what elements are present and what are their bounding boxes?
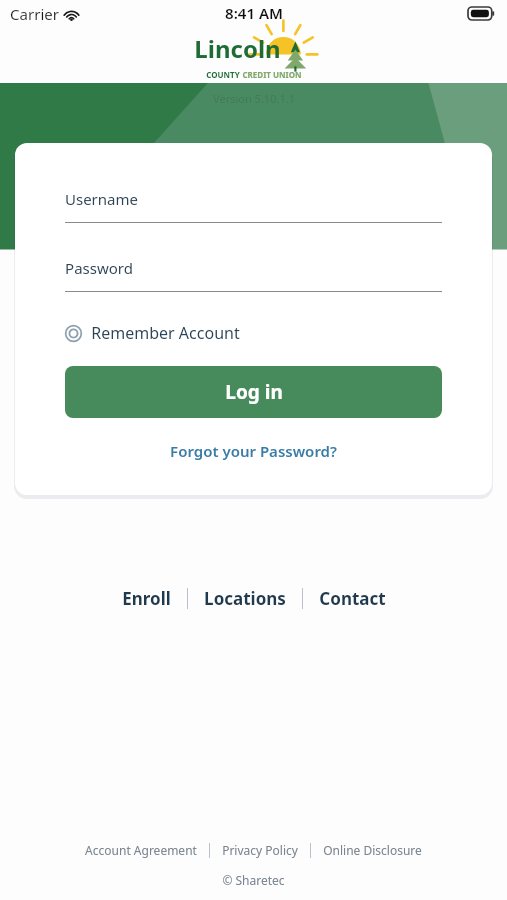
button[interactable]: Username	[65, 189, 442, 223]
staticText: Lincoln	[194, 32, 281, 65]
staticText: COUNTY	[206, 69, 240, 80]
staticText: Account Agreement	[85, 842, 197, 858]
staticText: Privacy Policy	[222, 842, 298, 858]
staticText: Carrier	[10, 4, 59, 24]
staticText: Username	[65, 189, 138, 209]
button[interactable]: Remember Account	[65, 322, 240, 344]
staticText: Forgot your Password?	[170, 441, 337, 461]
button[interactable]: Account Agreement	[73, 838, 209, 862]
button[interactable]: Log in	[65, 366, 442, 418]
staticText: Remember Account	[91, 322, 240, 344]
staticText: Log in	[225, 379, 283, 405]
button[interactable]: Locations	[188, 581, 302, 616]
staticText: CREDIT UNION	[242, 69, 302, 80]
staticText: Contact	[319, 587, 386, 610]
button[interactable]: Contact	[303, 581, 402, 616]
button[interactable]: Privacy Policy	[210, 838, 310, 862]
button[interactable]: Online Disclosure	[311, 838, 434, 862]
staticText: 8:41 AM	[225, 3, 283, 23]
staticText: Version 5.10.1.1	[213, 91, 295, 106]
button[interactable]: Enroll	[106, 581, 187, 616]
staticText: Password	[65, 258, 133, 278]
staticText: Enroll	[122, 587, 171, 610]
button[interactable]: Forgot your Password?	[65, 438, 442, 464]
staticText: © Sharetec	[222, 872, 285, 888]
button[interactable]: Password	[65, 258, 442, 292]
staticText: Online Disclosure	[323, 842, 422, 858]
staticText: Locations	[204, 587, 286, 610]
